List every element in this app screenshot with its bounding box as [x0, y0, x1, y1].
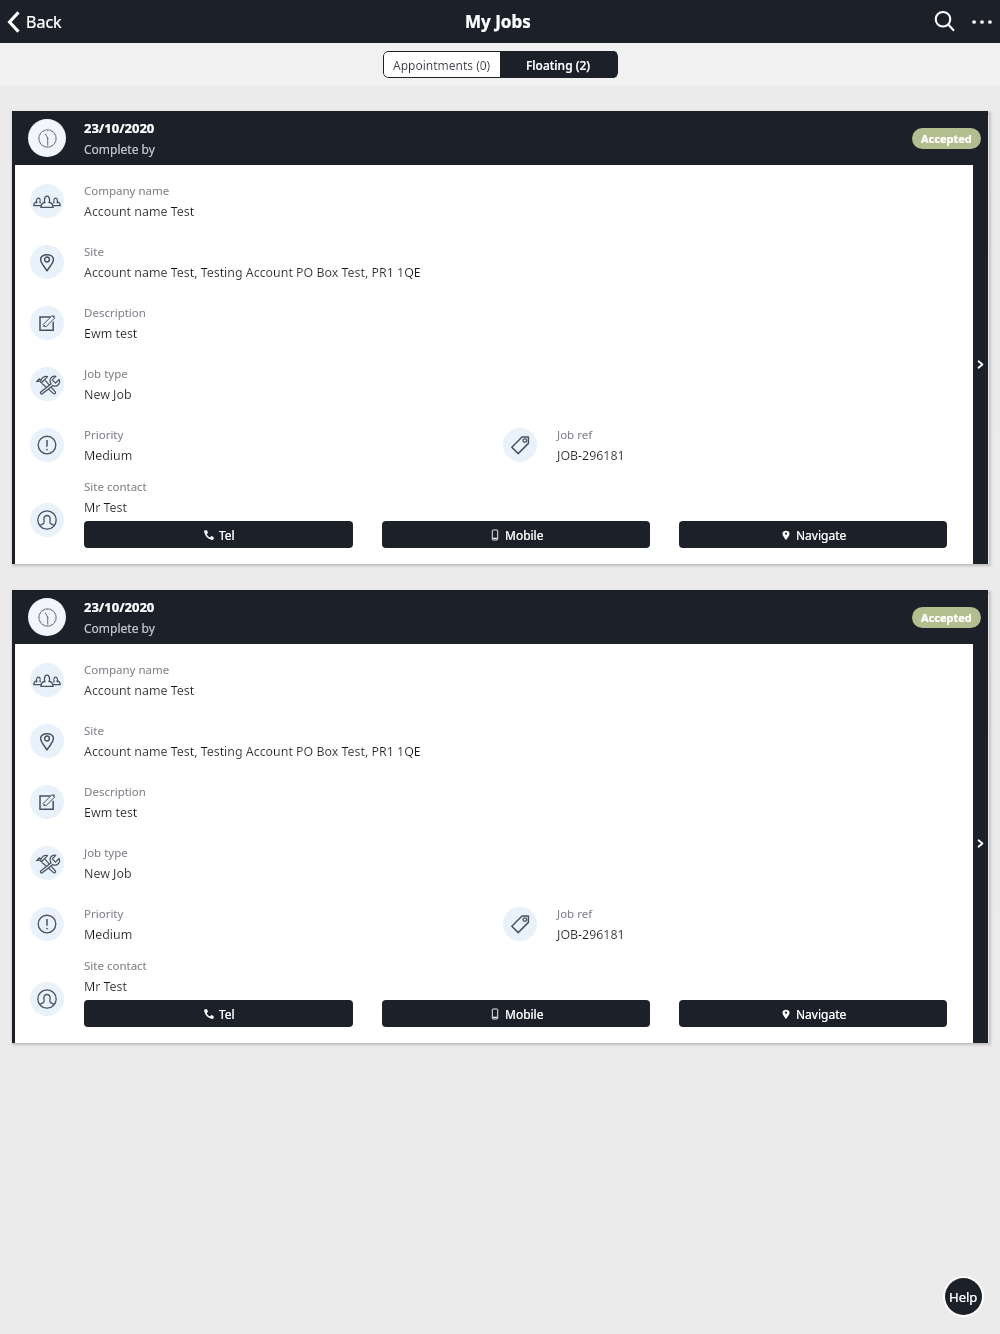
staticText: New Job	[84, 386, 132, 403]
button[interactable]: Mobile	[382, 521, 650, 548]
staticText: Description	[84, 305, 146, 321]
staticText: Floating (2)	[526, 57, 591, 73]
staticText: Tel	[219, 527, 235, 543]
staticText: Account name Test, Testing Account PO Bo…	[84, 743, 421, 760]
staticText: Company name	[84, 183, 170, 199]
staticText: My Jobs	[465, 10, 531, 33]
staticText: Accepted	[921, 131, 972, 146]
staticText: Complete by	[84, 141, 155, 157]
button[interactable]: Floating (2)	[500, 51, 617, 78]
staticText: Job ref	[557, 906, 593, 922]
button[interactable]: Search	[925, 2, 965, 42]
staticText: New Job	[84, 865, 132, 882]
staticText: Job type	[84, 366, 128, 382]
button[interactable]: Company name	[12, 165, 988, 564]
staticText: Job type	[84, 845, 128, 861]
staticText: Help	[949, 1288, 978, 1306]
button[interactable]: Help	[945, 1278, 982, 1315]
staticText: Site contact	[84, 958, 147, 974]
button[interactable]: Navigate	[679, 1000, 947, 1027]
staticText: Site contact	[84, 479, 147, 495]
staticText: Appointments (0)	[393, 57, 491, 73]
staticText: Account name Test	[84, 203, 195, 220]
staticText: 23/10/2020	[84, 119, 155, 137]
staticText: Accepted	[921, 610, 972, 625]
staticText: Navigate	[796, 527, 847, 543]
button[interactable]: Open job details	[973, 644, 988, 1043]
staticText: Account name Test, Testing Account PO Bo…	[84, 264, 421, 281]
button[interactable]: Company name	[12, 644, 988, 1043]
button[interactable]: 23/10/2020	[12, 111, 988, 165]
button[interactable]: Mobile	[382, 1000, 650, 1027]
button[interactable]: Open job details	[973, 165, 988, 564]
staticText: Medium	[84, 447, 133, 464]
staticText: Back	[26, 11, 62, 33]
staticText: Mobile	[505, 1006, 544, 1022]
staticText: Mr Test	[84, 499, 127, 516]
button[interactable]: Tel	[84, 1000, 353, 1027]
staticText: Medium	[84, 926, 133, 943]
staticText: Mr Test	[84, 978, 127, 995]
staticText: Tel	[219, 1006, 235, 1022]
staticText: Mobile	[505, 527, 544, 543]
staticText: 23/10/2020	[84, 598, 155, 616]
staticText: Ewm test	[84, 804, 138, 821]
staticText: Ewm test	[84, 325, 138, 342]
staticText: Description	[84, 784, 146, 800]
staticText: Account name Test	[84, 682, 195, 699]
button[interactable]: Navigate	[679, 521, 947, 548]
staticText: Priority	[84, 906, 124, 922]
button[interactable]: More options	[965, 5, 999, 39]
staticText: JOB-296181	[557, 447, 625, 464]
staticText: Site	[84, 723, 104, 739]
staticText: Complete by	[84, 620, 155, 636]
staticText: Priority	[84, 427, 124, 443]
button[interactable]: Back	[0, 5, 72, 39]
button[interactable]: Tel	[84, 521, 353, 548]
staticText: Job ref	[557, 427, 593, 443]
staticText: JOB-296181	[557, 926, 625, 943]
staticText: Navigate	[796, 1006, 847, 1022]
button[interactable]: 23/10/2020	[12, 590, 988, 644]
staticText: Company name	[84, 662, 170, 678]
button[interactable]: Appointments (0)	[383, 51, 500, 78]
staticText: Site	[84, 244, 104, 260]
